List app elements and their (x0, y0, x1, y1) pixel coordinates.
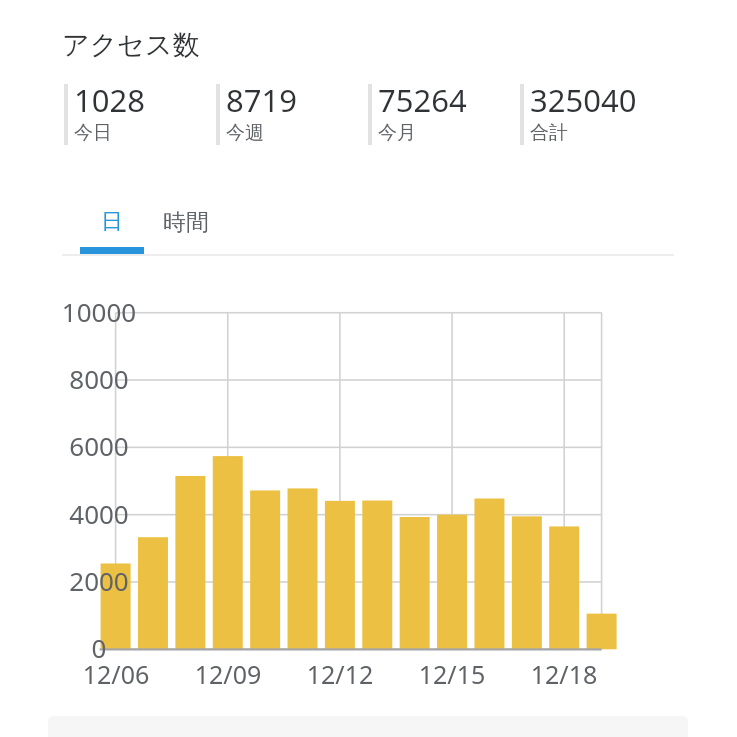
staticText: 10000 (1, 294, 197, 329)
button[interactable]: 時間 (150, 195, 221, 249)
staticText: 0 (1, 630, 197, 665)
staticText: 時間 (163, 208, 209, 237)
staticText: 今日 (74, 121, 112, 145)
staticText: 325040 (530, 79, 637, 121)
staticText: 12/15 (402, 657, 502, 691)
staticText: 日 (101, 208, 123, 236)
staticText: 6000 (1, 428, 197, 463)
staticText: 12/18 (514, 657, 614, 691)
staticText: 12/09 (178, 657, 278, 691)
button[interactable]: 日 (62, 195, 162, 249)
staticText: 4000 (1, 496, 197, 531)
staticText: 今月 (378, 121, 416, 145)
staticText: 75264 (378, 79, 467, 121)
staticText: 1028 (74, 79, 145, 121)
staticText: 12/06 (66, 657, 166, 691)
staticText: 8000 (1, 361, 197, 396)
staticText: 今週 (226, 121, 264, 145)
staticText: 8719 (226, 79, 297, 121)
staticText: 合計 (530, 121, 568, 145)
staticText: 2000 (1, 563, 197, 598)
staticText: 12/12 (290, 657, 390, 691)
staticText: アクセス数 (62, 28, 200, 62)
